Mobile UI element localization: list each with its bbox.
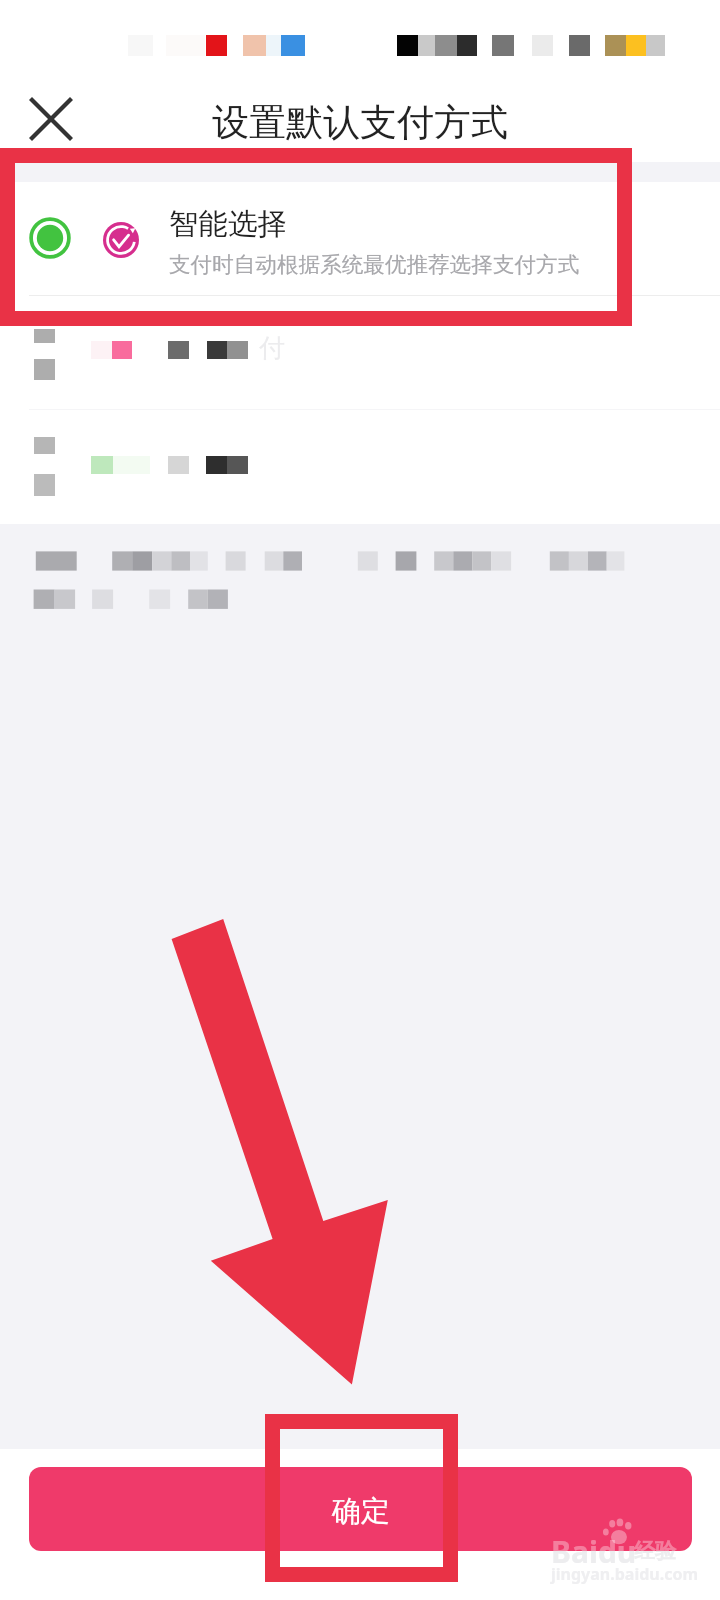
staticText: Baidu xyxy=(551,1531,637,1551)
button[interactable]: 确定 xyxy=(29,1467,692,1551)
staticText: 支付时自动根据系统最优推荐选择支付方式 xyxy=(169,251,580,278)
staticText: 付 xyxy=(259,332,285,365)
button[interactable]: 付 xyxy=(0,296,720,409)
staticText: 设置默认支付方式 xyxy=(212,99,508,146)
staticText: 确定 xyxy=(332,1493,390,1530)
button[interactable]: Close xyxy=(18,86,84,152)
staticText: 经验 xyxy=(634,1538,676,1551)
staticText: jingyan.baidu.com xyxy=(551,1563,699,1585)
button[interactable] xyxy=(0,410,720,524)
staticText: Baidu xyxy=(551,1551,637,1572)
staticText: 经验 xyxy=(634,1551,676,1564)
button[interactable]: 智能选择 xyxy=(0,182,720,295)
staticText: 智能选择 xyxy=(169,206,287,243)
